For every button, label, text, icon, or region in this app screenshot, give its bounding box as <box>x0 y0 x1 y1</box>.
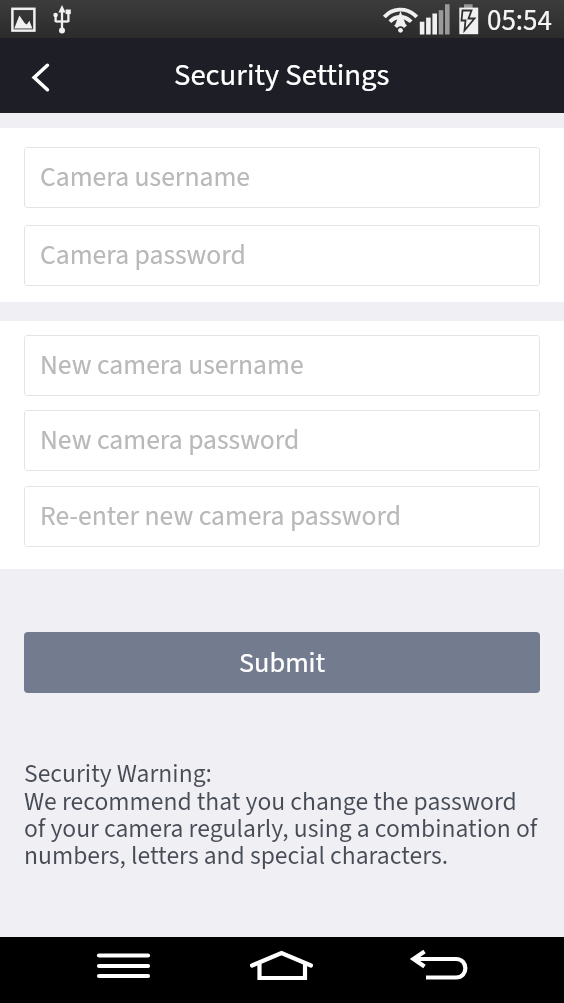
staticText: Submit <box>239 643 326 683</box>
button[interactable]: New camera password <box>24 410 540 471</box>
button[interactable]: Back <box>390 937 500 1003</box>
button[interactable]: Camera password <box>24 225 540 286</box>
staticText: 05:54 <box>487 0 552 37</box>
staticText: Security Settings <box>174 54 390 98</box>
button[interactable]: New camera username <box>24 335 540 396</box>
staticText: Camera username <box>40 158 250 197</box>
button[interactable]: Menu <box>74 937 174 1003</box>
staticText: Camera password <box>40 236 246 275</box>
button[interactable]: Camera username <box>24 147 540 208</box>
button[interactable]: Submit <box>24 632 540 693</box>
staticText: New camera username <box>40 346 304 385</box>
button[interactable]: Back <box>0 38 62 113</box>
button[interactable]: Home <box>222 937 342 1003</box>
button[interactable]: Re-enter new camera password <box>24 486 540 547</box>
staticText: Security Warning: We recommend that you … <box>24 756 538 874</box>
staticText: New camera password <box>40 421 300 460</box>
staticText: Re-enter new camera password <box>40 497 402 536</box>
